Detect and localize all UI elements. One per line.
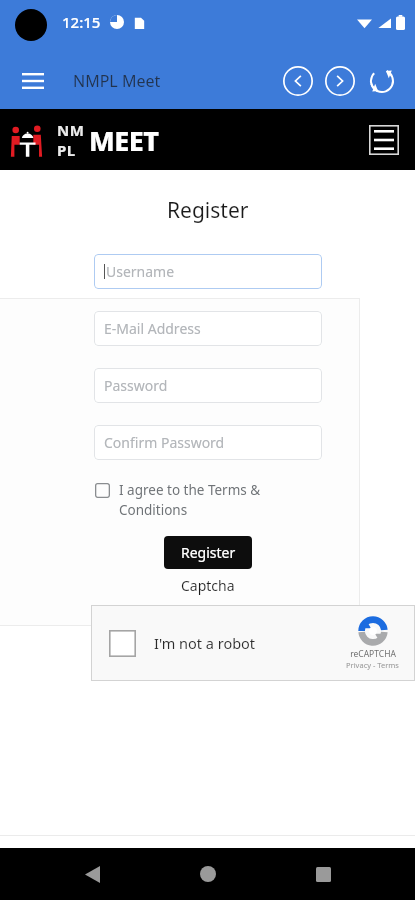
- button[interactable]: Recent apps: [299, 850, 347, 898]
- staticText: E-Mail Address: [104, 319, 201, 338]
- button[interactable]: Back: [68, 850, 116, 898]
- staticText: PL: [57, 140, 76, 160]
- staticText: 12:15: [62, 12, 101, 32]
- button[interactable]: Back: [281, 64, 315, 98]
- button[interactable]: Site menu: [365, 121, 403, 159]
- staticText: reCAPTCHA: [350, 648, 396, 660]
- staticText: Register: [181, 543, 236, 562]
- button[interactable]: Forward: [323, 64, 357, 98]
- staticText: NM: [57, 120, 85, 140]
- staticText: Password: [104, 376, 168, 395]
- staticText: Captcha: [181, 576, 235, 595]
- staticText: Privacy - Terms: [346, 660, 399, 670]
- button[interactable]: Home: [184, 850, 232, 898]
- staticText: I'm not a robot: [154, 633, 256, 653]
- staticText: I agree to the Terms & Conditions: [119, 481, 322, 519]
- button[interactable]: I agree to the Terms & Conditions: [94, 481, 322, 519]
- button[interactable]: E-Mail Address: [94, 311, 322, 346]
- button[interactable]: Menu: [12, 60, 54, 102]
- staticText: Username: [106, 262, 175, 281]
- button[interactable]: Password: [94, 368, 322, 403]
- button[interactable]: Register: [164, 536, 252, 569]
- button[interactable]: Confirm Password: [94, 425, 322, 460]
- staticText: Confirm Password: [104, 433, 225, 452]
- button[interactable]: Refresh: [365, 64, 399, 98]
- staticText: Register: [167, 196, 249, 225]
- button[interactable]: Username: [94, 254, 322, 289]
- staticText: MEET: [89, 122, 159, 159]
- button[interactable]: I'm not a robot: [91, 605, 415, 681]
- staticText: NMPL Meet: [73, 70, 161, 92]
